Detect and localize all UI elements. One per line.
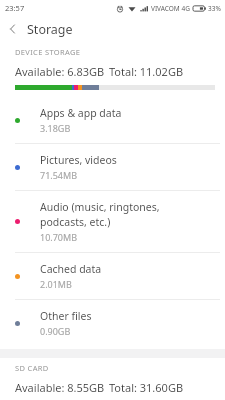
staticText: 10.70MB <box>40 231 78 243</box>
staticText: podcasts, etc.) <box>40 215 111 229</box>
staticText: Audio (music, ringtones, <box>40 200 160 214</box>
staticText: DEVICE STORAGE <box>15 47 81 57</box>
button[interactable]: Pictures, videos <box>0 144 225 190</box>
staticText: Pictures, videos <box>40 153 117 167</box>
staticText: Storage <box>27 21 73 38</box>
staticText: Available: 8.55GB <box>15 380 105 395</box>
staticText: 0.90GB <box>40 325 71 337</box>
button[interactable]: Apps & app data <box>0 97 225 143</box>
staticText: 23:57 <box>5 3 25 13</box>
staticText: SD CARD <box>15 363 49 373</box>
staticText: Cached data <box>40 262 102 276</box>
staticText: 3.18GB <box>40 122 71 134</box>
staticText: VIVACOM 4G <box>151 4 190 13</box>
button[interactable]: Audio (music, ringtones, <box>0 191 225 252</box>
staticText: Available: 6.83GB <box>15 64 105 79</box>
button[interactable]: Back <box>0 16 26 42</box>
staticText: 71.54MB <box>40 169 78 181</box>
staticText: 2.01MB <box>40 278 72 290</box>
staticText: 33% <box>208 4 221 13</box>
staticText: Total: 31.60GB <box>109 380 184 395</box>
staticText: Apps & app data <box>40 106 122 120</box>
staticText: Other files <box>40 309 92 323</box>
staticText: Total: 11.02GB <box>109 64 184 79</box>
button[interactable]: Other files <box>0 300 225 346</box>
button[interactable]: Cached data <box>0 253 225 299</box>
